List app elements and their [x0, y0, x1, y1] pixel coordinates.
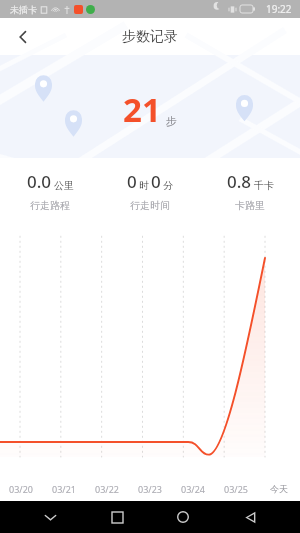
staticText: 03/24	[181, 483, 205, 495]
staticText: 行走时间	[130, 199, 170, 212]
button[interactable]: Back	[233, 501, 267, 533]
staticText: 03/25	[224, 483, 248, 495]
staticText: 0.8	[227, 170, 252, 193]
staticText: 千卡	[254, 179, 274, 192]
staticText: 分	[163, 179, 173, 192]
staticText: 步数记录	[122, 28, 178, 46]
staticText: 时	[139, 179, 149, 192]
staticText: 03/22	[95, 483, 119, 495]
staticText: 行走路程	[30, 199, 70, 212]
staticText: 步	[166, 114, 177, 128]
staticText: 03/20	[9, 483, 33, 495]
staticText: 03/21	[52, 483, 76, 495]
staticText: 21	[123, 87, 161, 132]
button[interactable]: 0	[100, 158, 200, 212]
staticText: 公里	[54, 179, 74, 192]
button[interactable]: 0.0	[0, 158, 100, 212]
staticText: 未插卡	[10, 4, 37, 15]
button[interactable]: Back	[8, 22, 38, 52]
button[interactable]: Recent apps	[100, 501, 134, 533]
button[interactable]: 0.8	[200, 158, 300, 212]
staticText: 03/23	[138, 483, 162, 495]
staticText: 0	[151, 170, 161, 193]
staticText: 卡路里	[235, 199, 265, 212]
button[interactable]: Hide	[33, 501, 67, 533]
button[interactable]: Home	[166, 501, 200, 533]
staticText: 0.0	[27, 170, 52, 193]
staticText: 19:22	[266, 2, 292, 16]
staticText: 今天	[270, 483, 288, 494]
staticText: 0	[127, 170, 137, 193]
